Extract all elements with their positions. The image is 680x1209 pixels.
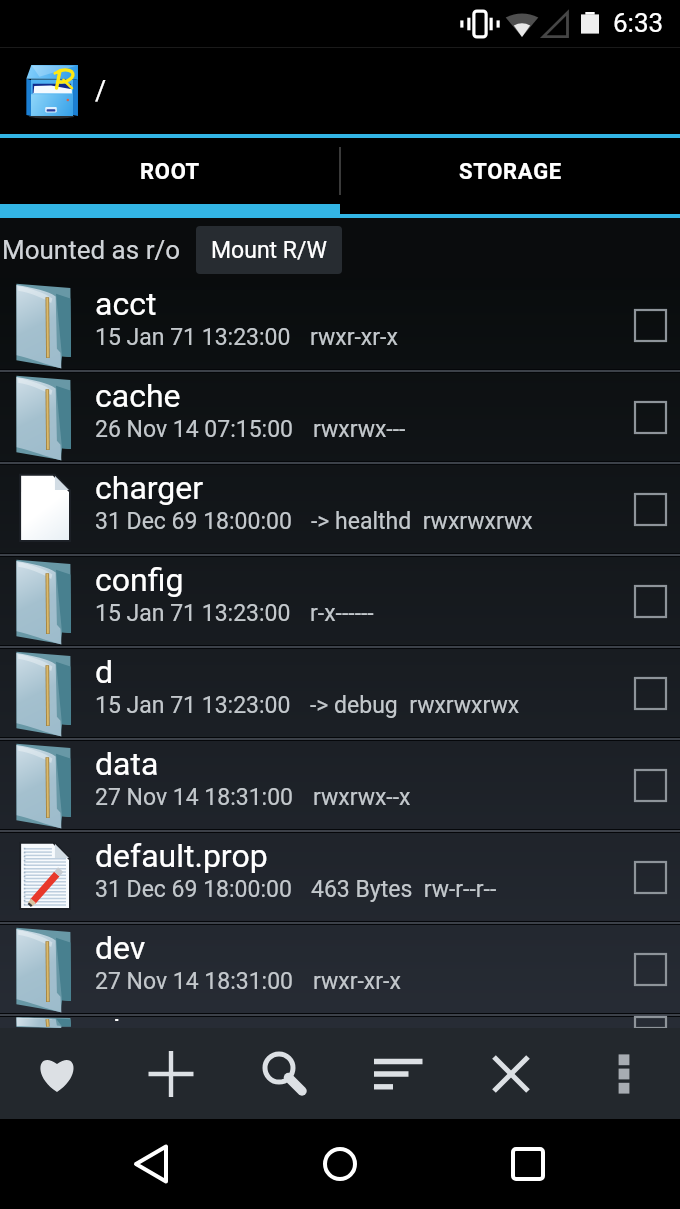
staticText: rwxrwx--x [313, 784, 411, 811]
button[interactable]: Recents [492, 1119, 564, 1209]
staticText: STORAGE [459, 159, 562, 185]
button[interactable]: Mount R/W [196, 226, 342, 274]
staticText: -> debug rwxrwxrwx [310, 692, 520, 719]
button[interactable]: default.prop [0, 833, 680, 921]
staticText: d [95, 653, 114, 691]
staticText: 6:33 [613, 8, 664, 38]
button[interactable]: charger [0, 465, 680, 553]
staticText: 31 Dec 69 18:00:00 [95, 876, 292, 903]
button[interactable]: dev [0, 925, 680, 1013]
staticText: / [95, 75, 107, 107]
button[interactable]: Select d [620, 649, 680, 737]
button[interactable]: Home [304, 1119, 376, 1209]
staticText: charger [95, 469, 204, 507]
button[interactable]: Close [454, 1028, 567, 1119]
staticText: 15 Jan 71 13:23:00 [95, 324, 291, 351]
button[interactable]: d [0, 649, 680, 737]
button[interactable]: Select config [620, 557, 680, 645]
button[interactable]: Select charger [620, 465, 680, 553]
staticText: rwxr-xr-x [310, 324, 398, 351]
button[interactable]: config [0, 557, 680, 645]
button[interactable]: More options [567, 1028, 680, 1119]
staticText: rwxrwx--- [313, 416, 406, 443]
staticText: 31 Dec 69 18:00:00 [95, 508, 292, 535]
staticText: 27 Nov 14 18:31:00 [95, 968, 294, 995]
button[interactable]: Back [115, 1119, 187, 1209]
staticText: 463 Bytes rw-r--r-- [311, 876, 497, 903]
staticText: rwxr-xr-x [313, 968, 401, 995]
staticText: 15 Jan 71 13:23:00 [95, 600, 291, 627]
staticText: Mount R/W [211, 237, 327, 264]
button[interactable]: cache [0, 373, 680, 461]
staticText: default.prop [95, 837, 268, 875]
button[interactable]: Select default.prop [620, 833, 680, 921]
staticText: 26 Nov 14 07:15:00 [95, 416, 294, 443]
button[interactable]: Search [228, 1028, 341, 1119]
button[interactable]: Select dev [620, 925, 680, 1013]
button[interactable]: data [0, 741, 680, 829]
button[interactable]: / [0, 48, 680, 134]
staticText: r-x------ [310, 600, 374, 627]
staticText: data [95, 745, 159, 783]
staticText: 15 Jan 71 13:23:00 [95, 692, 291, 719]
button[interactable]: Add [114, 1028, 228, 1119]
staticText: -> healthd rwxrwxrwx [311, 508, 533, 535]
staticText: dev [95, 929, 146, 967]
button[interactable]: Select data [620, 741, 680, 829]
button[interactable]: Select etc [620, 1017, 680, 1028]
staticText: 27 Nov 14 18:31:00 [95, 784, 294, 811]
button[interactable]: acct [0, 281, 680, 369]
staticText: cache [95, 377, 181, 415]
staticText: etc [95, 1010, 140, 1021]
staticText: acct [95, 285, 157, 323]
staticText: ROOT [140, 159, 200, 185]
button[interactable]: ROOT [0, 138, 340, 204]
button[interactable]: etc [0, 1017, 680, 1028]
button[interactable]: Select acct [620, 281, 680, 369]
button[interactable]: Sort [341, 1028, 454, 1119]
button[interactable]: Select cache [620, 373, 680, 461]
staticText: config [95, 561, 184, 599]
button[interactable]: STORAGE [340, 138, 680, 204]
button[interactable]: Favorites [0, 1028, 114, 1119]
staticText: Mounted as r/o [2, 235, 181, 265]
